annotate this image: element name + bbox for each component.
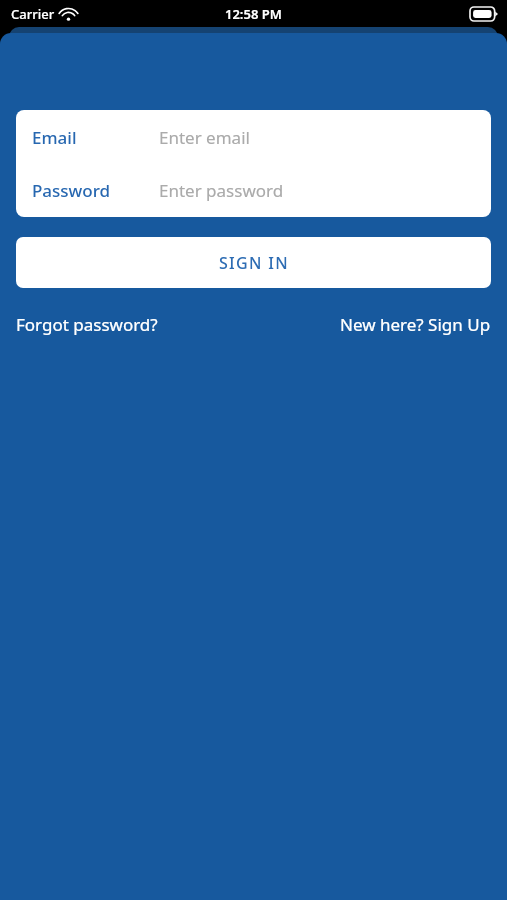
staticText: Forgot password? xyxy=(16,313,158,336)
staticText: Enter password xyxy=(159,179,284,202)
other: Wi-Fi xyxy=(60,8,77,21)
staticText: SIGN IN xyxy=(219,252,289,274)
button[interactable]: Email xyxy=(16,110,491,164)
staticText: 12:58 PM xyxy=(225,5,282,23)
button[interactable]: Password xyxy=(16,164,491,217)
staticText: Password xyxy=(32,179,111,202)
staticText: Enter email xyxy=(159,126,250,149)
button[interactable]: New here? Sign Up xyxy=(340,309,491,340)
staticText: Carrier xyxy=(11,5,55,23)
staticText: Email xyxy=(32,126,77,149)
other: Battery xyxy=(470,7,498,21)
button[interactable]: SIGN IN xyxy=(16,237,491,288)
staticText: New here? Sign Up xyxy=(340,313,491,336)
button[interactable]: Forgot password? xyxy=(16,309,158,340)
